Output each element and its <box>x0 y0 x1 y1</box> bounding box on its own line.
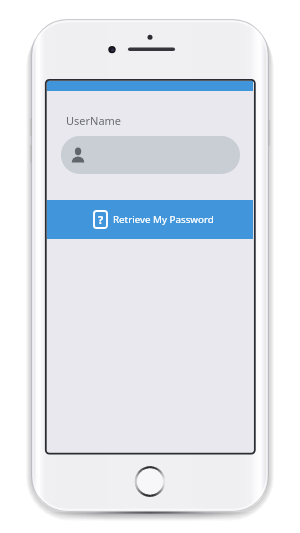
staticText: Retrieve My Password <box>113 213 214 226</box>
staticText: ? <box>98 212 104 227</box>
staticText: UserName <box>66 113 122 128</box>
button[interactable]: ? <box>47 200 253 239</box>
button[interactable] <box>61 136 240 174</box>
